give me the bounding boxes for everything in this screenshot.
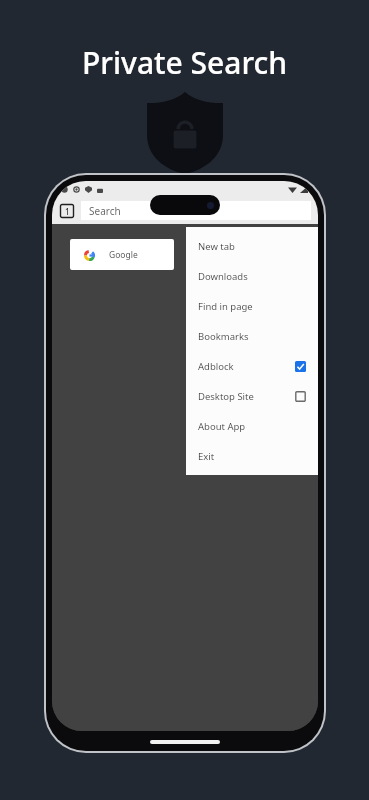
button[interactable]: About App bbox=[186, 411, 318, 441]
staticText: About App bbox=[198, 420, 246, 433]
button[interactable]: Find in page bbox=[186, 291, 318, 321]
staticText: Find in page bbox=[198, 300, 253, 313]
staticText: Exit bbox=[198, 450, 215, 463]
staticText: Private Search bbox=[82, 42, 288, 83]
button[interactable]: Google bbox=[70, 239, 174, 270]
button[interactable]: Search bbox=[81, 201, 311, 220]
button[interactable]: Exit bbox=[186, 441, 318, 471]
button[interactable]: Downloads bbox=[186, 261, 318, 291]
button[interactable]: Desktop Site bbox=[186, 381, 318, 411]
staticText: Bookmarks bbox=[198, 330, 249, 343]
staticText: 1 bbox=[65, 206, 70, 217]
button[interactable]: New tab bbox=[186, 231, 318, 261]
staticText: Search bbox=[89, 204, 121, 218]
button[interactable]: Tabs bbox=[59, 203, 75, 219]
staticText: Downloads bbox=[198, 270, 248, 283]
staticText: Google bbox=[109, 249, 138, 261]
staticText: Desktop Site bbox=[198, 390, 254, 403]
button[interactable]: Adblock bbox=[186, 351, 318, 381]
staticText: Adblock bbox=[198, 360, 234, 373]
button[interactable]: Bookmarks bbox=[186, 321, 318, 351]
staticText: New tab bbox=[198, 240, 235, 253]
